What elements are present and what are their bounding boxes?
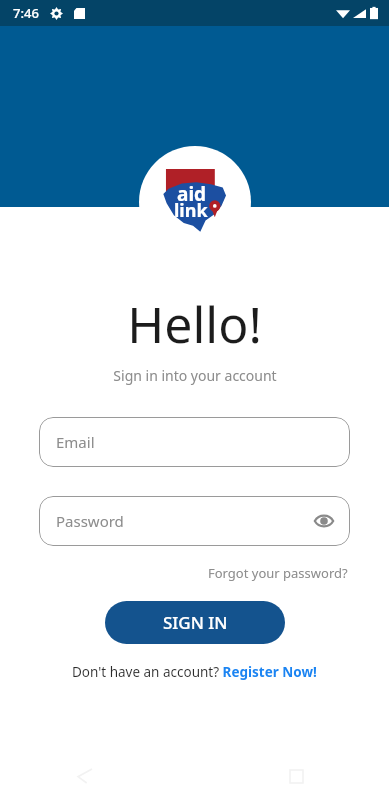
staticText: Forgot your password? bbox=[208, 564, 348, 582]
staticText: 7:46 bbox=[13, 4, 39, 22]
button[interactable]: Don't have an account? Register Now! bbox=[68, 661, 321, 683]
staticText: SIGN IN bbox=[163, 611, 228, 634]
staticText: Don't have an account? Register Now! bbox=[72, 663, 317, 681]
staticText: Hello! bbox=[127, 290, 262, 358]
staticText: Password bbox=[56, 511, 124, 531]
other: Recents bbox=[290, 770, 303, 783]
button[interactable]: Toggle password visibility bbox=[309, 506, 339, 536]
button[interactable]: Forgot your password? bbox=[206, 562, 350, 584]
staticText: Email bbox=[56, 432, 95, 452]
button[interactable]: Password bbox=[39, 496, 350, 546]
button[interactable]: SIGN IN bbox=[105, 601, 285, 644]
staticText: Sign in into your account bbox=[113, 366, 277, 385]
staticText: aid bbox=[177, 181, 207, 207]
staticText: link bbox=[174, 198, 208, 223]
button[interactable]: Email bbox=[39, 417, 350, 467]
other: Back bbox=[78, 769, 92, 783]
